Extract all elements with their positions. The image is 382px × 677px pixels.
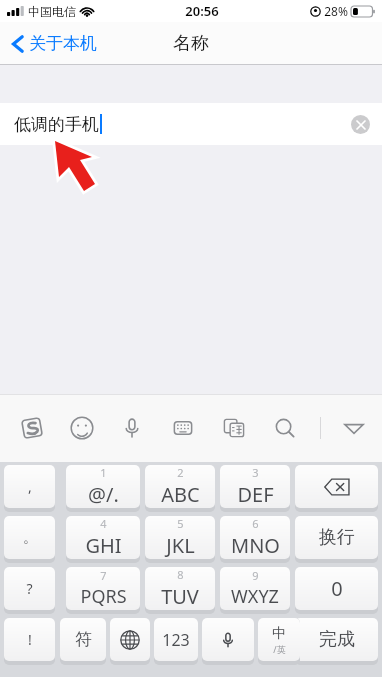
button[interactable]: 完成	[295, 618, 378, 665]
button[interactable]: Voice input	[116, 412, 148, 444]
staticText: 28%	[324, 3, 348, 19]
staticText: 换行	[319, 526, 355, 549]
staticText: 0	[331, 575, 343, 602]
staticText: 8	[177, 567, 184, 582]
button[interactable]: Translate	[218, 412, 250, 444]
button[interactable]: 低调的手机	[0, 103, 382, 145]
staticText: 2	[177, 465, 184, 480]
button[interactable]: 换行	[295, 516, 378, 563]
staticText: ABC	[161, 481, 200, 508]
button[interactable]: 5	[145, 516, 215, 563]
button[interactable]: Search	[269, 412, 301, 444]
staticText: GHI	[85, 532, 122, 559]
staticText: 6	[252, 516, 259, 531]
button[interactable]: Clear text	[351, 115, 370, 134]
button[interactable]: 符	[60, 618, 106, 665]
button[interactable]: 2	[145, 465, 215, 512]
button[interactable]: !	[4, 618, 55, 665]
staticText: 名称	[173, 32, 209, 55]
staticText: 1	[100, 465, 107, 480]
staticText: MNO	[231, 532, 280, 559]
button[interactable]: ,	[4, 465, 55, 512]
button[interactable]: 9	[220, 567, 290, 614]
button[interactable]: 123	[154, 618, 198, 665]
staticText: JKL	[166, 532, 195, 559]
button[interactable]: Keyboard layout	[167, 412, 199, 444]
staticText: @/.	[88, 481, 119, 508]
staticText: 9	[252, 568, 259, 583]
staticText: 5	[177, 516, 184, 531]
staticText: 中	[272, 625, 286, 643]
staticText: 。	[23, 529, 37, 547]
button[interactable]: 6	[220, 516, 290, 563]
staticText: 低调的手机	[14, 114, 99, 135]
button[interactable]: 1	[66, 465, 140, 512]
button[interactable]: ?	[4, 567, 55, 614]
button[interactable]: Backspace	[295, 465, 378, 512]
button[interactable]: 4	[66, 516, 140, 563]
staticText: 中国电信	[28, 4, 76, 19]
staticText: DEF	[237, 481, 274, 508]
staticText: 3	[252, 465, 259, 480]
staticText: PQRS	[80, 584, 127, 609]
staticText: 完成	[319, 628, 355, 651]
staticText: 20:56	[185, 2, 219, 20]
button[interactable]: Hide keyboard	[338, 412, 370, 444]
button[interactable]: 7	[66, 567, 140, 614]
staticText: WXYZ	[231, 584, 279, 609]
staticText: 4	[100, 516, 107, 531]
staticText: 7	[100, 568, 107, 583]
button[interactable]: 3	[220, 465, 290, 512]
staticText: TUV	[161, 583, 199, 610]
button[interactable]: Switch language	[110, 618, 150, 665]
button[interactable]: 8	[145, 567, 215, 614]
staticText: /英	[273, 643, 286, 655]
button[interactable]: Voice input	[202, 618, 254, 665]
staticText: !	[28, 630, 32, 649]
staticText: 123	[162, 629, 190, 651]
staticText: 关于本机	[29, 33, 97, 54]
button[interactable]: 中	[258, 618, 300, 665]
staticText: ?	[26, 579, 33, 598]
button[interactable]: 0	[295, 567, 378, 614]
button[interactable]: Sogou input method	[16, 412, 48, 444]
button[interactable]: Back to 关于本机	[8, 29, 101, 58]
button[interactable]: Emoji	[66, 412, 98, 444]
button[interactable]: 。	[4, 516, 55, 563]
staticText: ,	[28, 477, 32, 496]
staticText: 符	[75, 629, 92, 650]
